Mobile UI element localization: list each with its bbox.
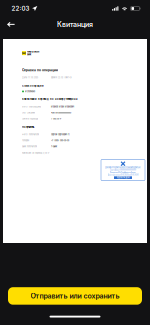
staticText: Статус операции <box>22 84 44 87</box>
staticText: Дата 17.03.2025 <box>22 76 38 79</box>
staticText: Счёт списания <box>22 112 35 114</box>
staticText: ФИО получателя <box>22 133 39 136</box>
button[interactable]: Back <box>0 17 22 32</box>
staticText: Банк <box>27 53 31 56</box>
staticText: Исполнено <box>25 90 35 93</box>
staticText: Время 22:02 (GMT+3) <box>51 76 72 79</box>
staticText: Телефон <box>22 139 29 142</box>
staticText: Действителен с 01.01.2025 по 01.01.2026 <box>107 174 138 176</box>
staticText: ПОДТВЕРЖДЕНО <box>116 177 129 179</box>
staticText: 40817810000000000000 <box>51 112 71 114</box>
staticText: 22:03 <box>11 5 29 12</box>
staticText: Комиссия за перевод 0,00 ₽ <box>22 152 49 154</box>
staticText: ФИО плательщика <box>22 106 41 108</box>
staticText: ДОКУМЕНТ ПОДПИСАН ЭЛЕКТРОННОЙ ПОДПИСЬЮ <box>105 167 141 169</box>
staticText: Владелец АО «Райффайзенбанк» <box>110 171 136 173</box>
staticText: Отправить или сохранить <box>30 292 119 300</box>
staticText: Райффайзен <box>27 50 39 53</box>
staticText: +7 (900) 000-00-00 <box>51 139 69 142</box>
button[interactable]: Отправить или сохранить <box>8 287 142 305</box>
staticText: Получатель <box>22 125 34 128</box>
staticText: Банк получателя <box>22 145 37 148</box>
staticText: Т-Банк <box>51 145 57 148</box>
staticText: 1 000,00 ₽ <box>51 118 61 120</box>
staticText: Справка по операции <box>22 68 58 72</box>
staticText: Квитанция <box>57 20 93 29</box>
staticText: Сумма перевода <box>22 118 38 120</box>
staticText: Сергей Сергеевич П. <box>51 133 70 136</box>
staticText: Иванов Иван Иванович <box>51 106 74 108</box>
staticText: Сертификат 0000 0000 0000 0000 <box>110 169 136 171</box>
staticText: Клиентский перевод по номеру телефона <box>22 98 77 101</box>
